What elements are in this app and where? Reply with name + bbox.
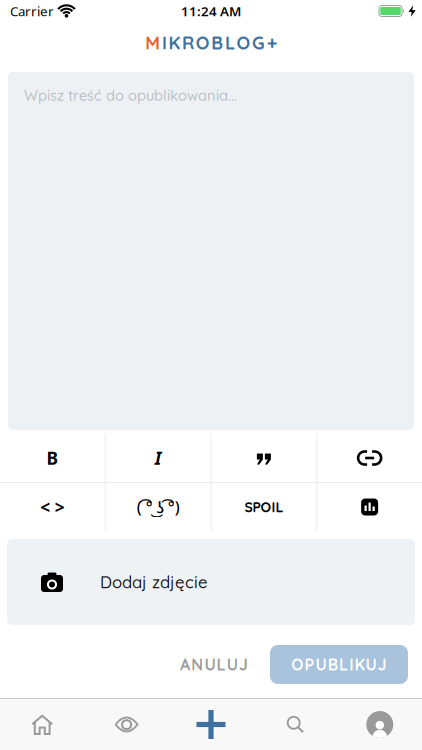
staticText: 11:24 AM (181, 2, 241, 20)
staticText: B (328, 654, 338, 674)
button[interactable]: Italic (106, 434, 211, 482)
staticText: I (155, 446, 162, 470)
staticText: I (349, 654, 353, 674)
staticText: K (168, 32, 180, 54)
button[interactable]: Bold (0, 434, 105, 482)
staticText: R (182, 32, 194, 54)
button[interactable]: Lenny face (106, 483, 211, 531)
staticText: U (227, 654, 238, 674)
staticText: U (316, 654, 327, 674)
button[interactable]: Profile (338, 699, 422, 750)
staticText: < (40, 495, 50, 518)
staticText: ( ͡° ͜ʖ ͡°) (137, 496, 180, 518)
staticText: G (252, 32, 265, 54)
button[interactable]: A (180, 654, 248, 674)
staticText: L (225, 32, 235, 54)
staticText: Carrier (10, 2, 54, 20)
button[interactable]: Observed (84, 699, 169, 750)
staticText: A (180, 654, 190, 674)
staticText: U (204, 654, 215, 674)
button[interactable]: Search (253, 699, 338, 750)
staticText: O (291, 654, 303, 674)
staticText: I (162, 32, 167, 54)
staticText: L (217, 654, 226, 674)
staticText: Wpisz treść do opublikowania... (24, 86, 237, 104)
staticText: Dodaj zdjęcie (100, 572, 208, 592)
staticText: B (211, 32, 223, 54)
staticText: J (378, 654, 387, 674)
staticText: N (191, 654, 203, 674)
button[interactable]: Code (0, 483, 105, 531)
staticText: > (55, 495, 65, 518)
staticText: B (46, 446, 58, 469)
button[interactable]: Link (317, 434, 422, 482)
staticText: P (304, 654, 314, 674)
button[interactable]: Dodaj zdjęcie (0, 539, 422, 625)
button[interactable]: Poll (317, 483, 422, 531)
staticText: J (239, 654, 248, 674)
staticText: M (145, 32, 160, 54)
staticText: + (267, 32, 277, 54)
button[interactable]: O (270, 645, 408, 684)
staticText: L (339, 654, 348, 674)
staticText: U (366, 654, 377, 674)
staticText: K (354, 654, 364, 674)
staticText: O (236, 32, 250, 54)
button[interactable]: Add entry (169, 699, 253, 750)
button[interactable]: Spoiler (211, 483, 316, 531)
button[interactable]: Home (0, 699, 84, 750)
staticText: SPOIL (244, 498, 283, 516)
button[interactable]: Quote (211, 434, 316, 482)
staticText: O (196, 32, 210, 54)
